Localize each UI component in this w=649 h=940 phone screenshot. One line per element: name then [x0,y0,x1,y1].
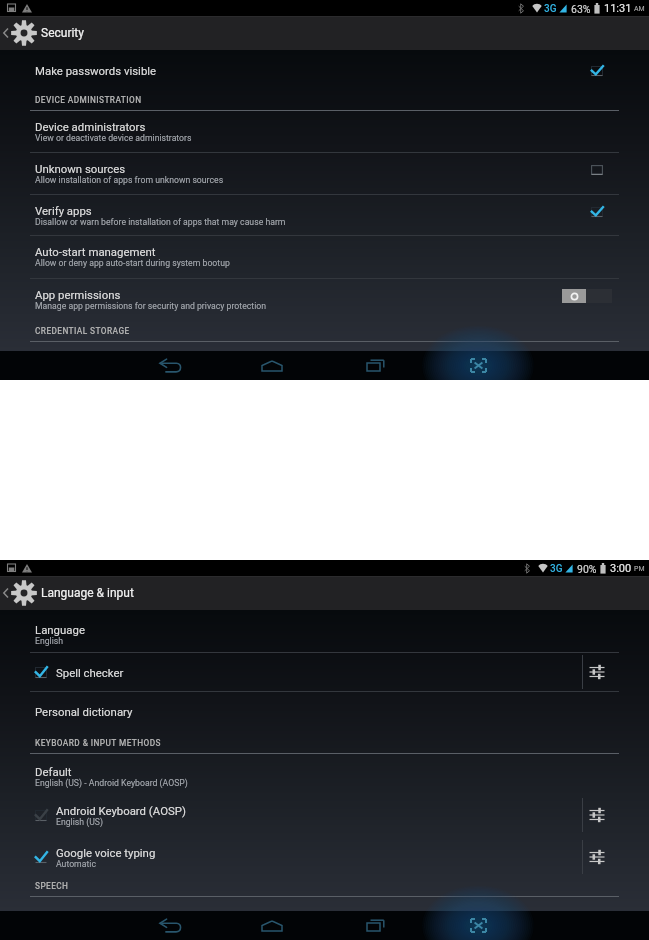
staticText: Default [35,765,72,778]
button[interactable]: Android Keyboard (AOSP) [0,794,582,836]
staticText: Make passwords visible [35,64,157,77]
staticText: 90% [577,563,597,575]
staticText: AM [634,5,645,13]
staticText: English (US) - Android Keyboard (AOSP) [35,778,188,788]
staticText: 3:00 [610,562,632,575]
staticText: 3G [544,3,557,15]
staticText: Spell checker [56,666,124,679]
staticText: CREDENTIAL STORAGE [35,326,130,336]
staticText: DEVICE ADMINISTRATION [35,95,142,105]
staticText: Auto-start management [35,245,156,258]
staticText: View or deactivate device administrators [35,133,192,143]
staticText: Security [41,26,84,40]
button[interactable]: Google voice typing [0,836,582,878]
staticText: Unknown sources [35,162,126,175]
staticText: Android Keyboard (AOSP) [56,804,186,817]
button[interactable]: Default [0,754,649,794]
button[interactable]: App permissions [0,279,649,320]
staticText: SPEECH [35,881,69,891]
button[interactable]: Spell checker [0,653,582,691]
button[interactable]: Recents [324,351,426,380]
button[interactable]: Security [0,16,649,50]
button[interactable]: Unknown sources [0,153,649,194]
staticText: Allow or deny app auto-start during syst… [35,258,230,268]
button[interactable]: Personal dictionary [0,692,649,733]
button[interactable]: Screenshot [427,351,529,380]
staticText: Google voice typing [56,846,156,859]
staticText: English [35,636,64,646]
staticText: App permissions [35,288,121,301]
staticText: Language & input [41,586,134,600]
button[interactable]: Home [221,351,323,380]
button[interactable]: Language & input [0,576,649,610]
button[interactable]: Input method settings [583,794,611,836]
button[interactable]: Home [221,911,323,940]
button[interactable]: Make passwords visible [0,55,649,86]
button[interactable]: Back [119,351,221,380]
button[interactable]: Verify apps [0,195,649,235]
staticText: Allow installation of apps from unknown … [35,175,224,185]
staticText: Personal dictionary [35,705,133,718]
button[interactable]: Back [119,911,221,940]
staticText: 11:31 [604,2,632,15]
button[interactable]: Auto-start management [0,236,649,278]
staticText: Verify apps [35,204,92,217]
button[interactable]: Device administrators [0,111,649,152]
staticText: Device administrators [35,120,146,133]
staticText: English (US) [56,817,104,827]
staticText: 3G [550,563,563,575]
button[interactable]: Screenshot [427,911,529,940]
staticText: 63% [571,3,591,15]
button[interactable]: Language [0,615,649,652]
button[interactable]: Recents [324,911,426,940]
staticText: Language [35,623,85,636]
button[interactable]: Input method settings [583,836,611,878]
staticText: PM [634,565,645,573]
staticText: Disallow or warn before installation of … [35,217,286,227]
staticText: KEYBOARD & INPUT METHODS [35,738,161,748]
button[interactable]: Input method settings [583,653,611,691]
staticText: Manage app permissions for security and … [35,301,266,311]
staticText: Automatic [56,859,96,869]
